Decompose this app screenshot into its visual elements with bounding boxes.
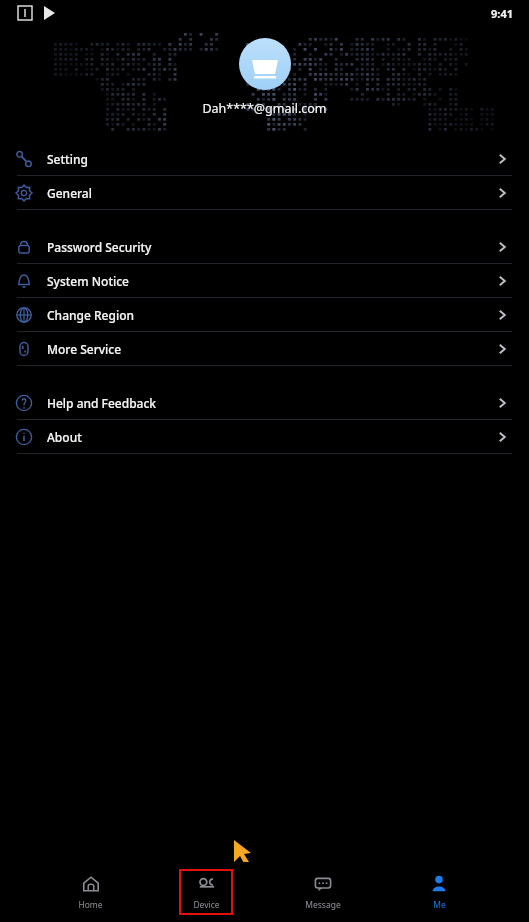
button[interactable]: More Service (0, 332, 529, 365)
staticText: About (47, 429, 82, 445)
button[interactable]: Message (296, 869, 350, 915)
staticText: General (47, 185, 92, 201)
button[interactable]: Password Security (0, 230, 529, 263)
button[interactable]: Me (412, 869, 466, 915)
staticText: Me (433, 899, 446, 911)
button[interactable]: General (0, 176, 529, 209)
button[interactable]: Profile avatar (239, 38, 291, 90)
button[interactable]: Help and Feedback (0, 386, 529, 419)
staticText: Dah****@gmail.com (202, 100, 327, 117)
staticText: Help and Feedback (47, 395, 157, 411)
staticText: Message (305, 899, 341, 911)
staticText: More Service (47, 341, 122, 357)
staticText: Home (78, 899, 103, 911)
staticText: Password Security (47, 239, 152, 255)
button[interactable]: Home (63, 869, 117, 915)
staticText: Setting (47, 151, 88, 167)
button[interactable]: Device (181, 871, 231, 913)
staticText: Device (193, 899, 220, 911)
button[interactable]: Setting (0, 142, 529, 175)
button[interactable]: System Notice (0, 264, 529, 297)
staticText: System Notice (47, 273, 129, 289)
staticText: 9:41 (491, 6, 513, 21)
staticText: Change Region (47, 307, 134, 323)
button[interactable]: About (0, 420, 529, 453)
button[interactable]: Change Region (0, 298, 529, 331)
